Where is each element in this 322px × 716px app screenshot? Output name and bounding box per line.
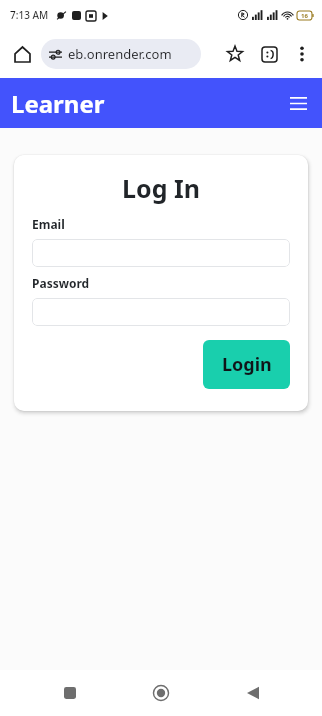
button[interactable]: Home <box>139 671 183 715</box>
staticText: 16 <box>301 12 308 20</box>
button[interactable]: Menu <box>281 86 315 120</box>
button[interactable]: More options <box>286 38 318 70</box>
staticText: eb.onrender.com <box>68 45 172 63</box>
button[interactable]: eb.onrender.com <box>41 39 201 69</box>
staticText: Login <box>222 352 272 377</box>
button[interactable]: Password input <box>32 298 290 326</box>
button[interactable]: Recent apps <box>48 671 92 715</box>
button[interactable]: Learner <box>11 87 105 120</box>
button[interactable]: Back <box>231 671 275 715</box>
button[interactable]: Login <box>203 340 290 389</box>
staticText: Log In <box>32 171 290 205</box>
staticText: Password <box>32 275 90 291</box>
staticText: Email <box>32 216 65 232</box>
button[interactable]: Bookmark <box>218 37 252 71</box>
button[interactable]: Email input <box>32 239 290 267</box>
button[interactable]: Home <box>6 38 38 70</box>
button[interactable]: Tabs <box>252 37 286 71</box>
staticText: 7:13 AM <box>10 8 49 22</box>
